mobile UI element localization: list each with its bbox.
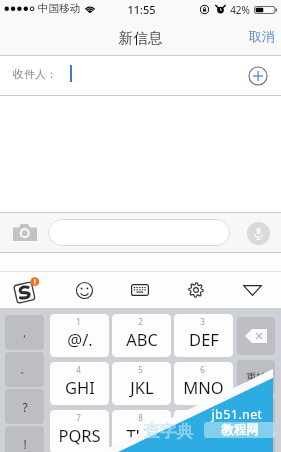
button[interactable]: 2 [112, 314, 171, 357]
staticText: 11:55 [127, 2, 156, 17]
staticText: 9 [200, 412, 205, 423]
button[interactable]: Switch keyboard [122, 272, 158, 308]
button[interactable]: 7 [50, 410, 109, 452]
staticText: ! [23, 436, 27, 452]
button[interactable]: 符 [237, 398, 275, 432]
staticText: 符 [251, 409, 262, 422]
button[interactable]: ! [5, 426, 44, 452]
staticText: 3 [200, 316, 205, 327]
staticText: , [23, 326, 26, 340]
staticText: 重输 [246, 371, 267, 384]
staticText: ABC [126, 328, 158, 350]
button[interactable]: 8 [112, 410, 171, 452]
button[interactable]: Emoji [66, 272, 102, 308]
staticText: ? [22, 399, 28, 415]
staticText: 5 [138, 364, 143, 375]
staticText: jb51.net [211, 406, 263, 423]
staticText: JKL [130, 376, 154, 398]
button[interactable]: Voice input [247, 222, 270, 245]
staticText: 新信息 [118, 29, 163, 48]
staticText: 教程网 [221, 422, 259, 438]
button[interactable]: Settings [178, 272, 214, 308]
staticText: 收件人： [13, 67, 57, 81]
staticText: TUV [126, 424, 158, 446]
staticText: 7 [76, 412, 81, 423]
staticText: WXYZ [182, 424, 226, 446]
button[interactable] [237, 436, 275, 452]
button[interactable]: Add contact [247, 65, 269, 87]
staticText: GHI [65, 376, 95, 398]
staticText: 1 [76, 316, 81, 327]
staticText: 。 [20, 363, 30, 376]
button[interactable]: ? [5, 389, 44, 424]
staticText: 查字典 [143, 421, 193, 442]
button[interactable]: Backspace [237, 317, 275, 355]
button[interactable]: Camera [12, 223, 37, 242]
staticText: jiaocheng.chazidian.com [145, 439, 229, 449]
button[interactable]: 9 [174, 410, 233, 452]
button[interactable] [48, 219, 230, 246]
button[interactable]: 重输 [237, 360, 275, 394]
staticText: DEF [189, 328, 219, 350]
staticText: 2 [138, 316, 143, 327]
button[interactable]: 。 [5, 352, 44, 387]
button[interactable]: Sogou input method [9, 272, 45, 308]
staticText: @/. [67, 328, 93, 350]
button[interactable]: 4 [50, 362, 109, 405]
button[interactable]: 5 [112, 362, 171, 405]
staticText: 4 [76, 364, 81, 375]
staticText: 6 [200, 364, 205, 375]
staticText: 中国移动 [38, 2, 80, 15]
staticText: 42% [230, 3, 250, 17]
button[interactable]: 1 [50, 314, 109, 357]
staticText: 取消 [249, 28, 275, 44]
staticText: MNO [183, 376, 224, 398]
button[interactable]: 取消 [239, 23, 281, 49]
staticText: PQRS [58, 424, 101, 446]
button[interactable]: 6 [174, 362, 233, 405]
button[interactable]: , [5, 315, 44, 350]
button[interactable]: 3 [174, 314, 233, 357]
button[interactable]: Hide keyboard [234, 272, 270, 308]
staticText: 8 [138, 412, 143, 423]
